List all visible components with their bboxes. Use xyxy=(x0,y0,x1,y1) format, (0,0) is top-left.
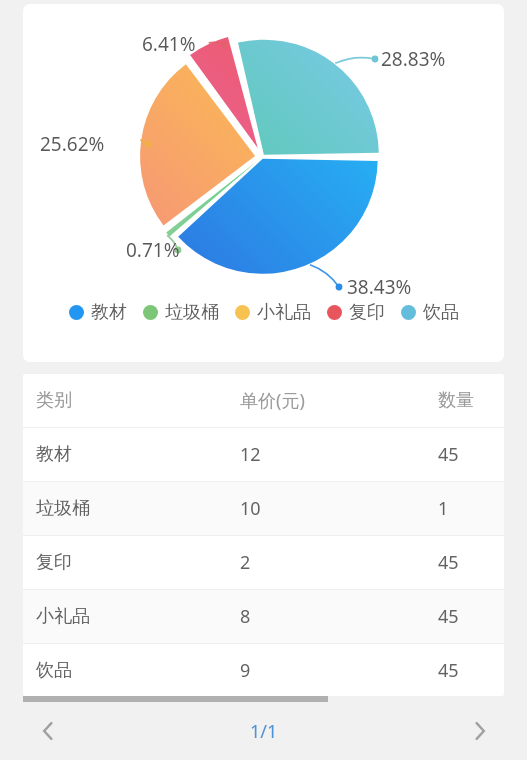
button[interactable]: 小礼品 xyxy=(23,590,504,643)
staticText: 教材 xyxy=(91,301,127,324)
staticText: 45 xyxy=(438,550,459,575)
button[interactable]: 教材 xyxy=(69,301,127,324)
staticText: 饮品 xyxy=(423,301,459,324)
button[interactable]: 垃圾桶 xyxy=(143,301,219,324)
staticText: 6.41% xyxy=(142,31,196,57)
staticText: 垃圾桶 xyxy=(165,301,219,324)
staticText: 12 xyxy=(240,442,261,467)
staticText: 8 xyxy=(240,604,251,629)
button[interactable]: 1/1 xyxy=(95,702,432,760)
staticText: 38.43% xyxy=(347,274,412,300)
staticText: 9 xyxy=(240,658,251,683)
staticText: 复印 xyxy=(36,551,72,574)
button[interactable]: 教材 xyxy=(23,428,504,481)
staticText: 45 xyxy=(438,604,459,629)
staticText: 复印 xyxy=(349,301,385,324)
staticText: 10 xyxy=(240,496,261,521)
button[interactable]: Next page xyxy=(432,702,527,760)
button[interactable]: 小礼品 xyxy=(235,301,311,324)
button[interactable]: 复印 xyxy=(23,536,504,589)
staticText: 45 xyxy=(438,658,459,683)
button[interactable]: 垃圾桶 xyxy=(23,482,504,535)
staticText: 28.83% xyxy=(381,46,446,72)
button[interactable]: Previous page xyxy=(0,702,95,760)
staticText: 数量 xyxy=(438,389,474,412)
staticText: 教材 xyxy=(36,443,72,466)
button[interactable]: 复印 xyxy=(327,301,385,324)
staticText: 小礼品 xyxy=(257,301,311,324)
staticText: 垃圾桶 xyxy=(36,497,90,520)
staticText: 25.62% xyxy=(40,131,105,157)
staticText: 1 xyxy=(438,496,449,521)
staticText: 45 xyxy=(438,442,459,467)
staticText: 1/1 xyxy=(250,719,278,744)
staticText: 单价(元) xyxy=(240,388,305,413)
staticText: 2 xyxy=(240,550,251,575)
button[interactable]: 饮品 xyxy=(23,644,504,696)
button[interactable]: 类别 xyxy=(23,374,504,427)
staticText: 小礼品 xyxy=(36,605,90,628)
button[interactable]: 饮品 xyxy=(401,301,459,324)
staticText: 0.71% xyxy=(126,237,180,263)
staticText: 类别 xyxy=(36,389,72,412)
staticText: 饮品 xyxy=(36,659,72,682)
